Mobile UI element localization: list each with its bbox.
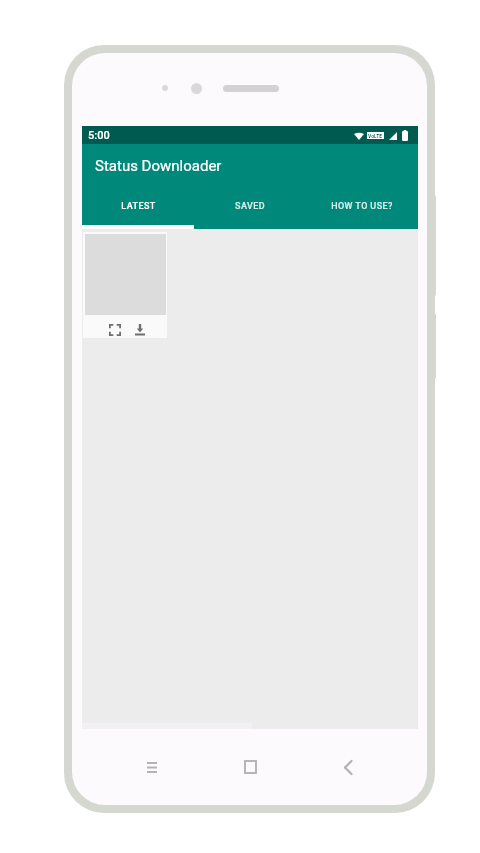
button[interactable]: SAVED: [194, 191, 306, 225]
staticText: SAVED: [235, 201, 265, 212]
staticText: HOW TO USE?: [331, 201, 393, 212]
staticText: VoLTE: [368, 133, 383, 139]
staticText: LATEST: [121, 201, 156, 212]
button[interactable]: Download: [130, 319, 150, 339]
button[interactable]: Recents: [133, 748, 171, 786]
button[interactable]: View fullscreen: [105, 320, 125, 340]
button[interactable]: Back: [329, 748, 367, 786]
button[interactable]: HOW TO USE?: [306, 191, 418, 225]
staticText: 5:00: [88, 129, 110, 142]
button[interactable]: Home: [231, 748, 269, 786]
button[interactable]: LATEST: [82, 191, 194, 225]
button[interactable]: View fullscreen: [83, 232, 167, 338]
staticText: Status Downloader: [95, 157, 222, 175]
